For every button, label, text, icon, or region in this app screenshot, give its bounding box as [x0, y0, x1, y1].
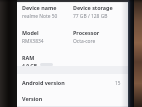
- staticText: 15: [115, 80, 121, 86]
- staticText: 77 GB / 128 GB: [73, 13, 108, 20]
- button[interactable]: RAM: [22, 54, 73, 66]
- button[interactable]: Version: [17, 91, 128, 106]
- staticText: Octa-core: [73, 38, 96, 45]
- staticText: RAM: [22, 54, 35, 61]
- staticText: RMX3834: [22, 38, 44, 45]
- staticText: realme Note 50: [22, 13, 58, 20]
- button[interactable]: Device storage: [73, 4, 128, 20]
- button[interactable]: Android version: [17, 74, 128, 91]
- staticText: Model: [22, 29, 39, 36]
- button[interactable]: Model: [22, 29, 73, 45]
- staticText: Version: [22, 95, 43, 102]
- staticText: Device storage: [73, 4, 113, 11]
- staticText: 4.0 GB: [22, 63, 38, 66]
- staticText: Android version: [22, 79, 65, 86]
- button[interactable]: Device name: [22, 4, 73, 20]
- staticText: Processor: [73, 29, 100, 36]
- staticText: Device name: [22, 4, 57, 11]
- button[interactable]: Processor: [73, 29, 128, 45]
